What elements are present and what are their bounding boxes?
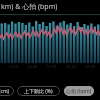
button[interactable]: 上下動比 (%)	[17, 86, 60, 96]
staticText: 10:00	[27, 64, 38, 69]
staticText: 15:00	[46, 64, 57, 69]
staticText: 上下動比 (%)	[24, 88, 53, 95]
staticText: 5:00	[10, 64, 18, 69]
staticText: km) & 心拍 (bpm)	[1, 2, 58, 12]
staticText: 心拍 (bpm)	[66, 88, 92, 95]
staticText: (cm)	[0, 88, 10, 95]
staticText: 20:00	[66, 64, 77, 69]
button[interactable]: (cm)	[0, 86, 14, 96]
staticText: 25:00	[85, 64, 96, 69]
button[interactable]: 心拍 (bpm)	[64, 86, 94, 96]
